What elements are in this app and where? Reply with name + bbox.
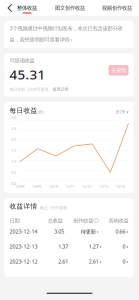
staticText: 0 ›	[122, 258, 128, 265]
staticText: 收益详情	[9, 202, 37, 210]
button[interactable]: 整体收益	[16, 0, 38, 16]
staticText: 日期	[9, 217, 19, 224]
staticText: 1.37	[58, 243, 68, 250]
staticText: 整体收益	[17, 5, 37, 11]
staticText: 图文创作收益	[55, 5, 85, 11]
staticText: 总收益	[48, 217, 63, 224]
staticText: 截止 13:59 更新	[40, 205, 67, 210]
button[interactable]: 2023-12-14	[9, 224, 128, 239]
staticText: 12/11	[65, 183, 74, 189]
staticText: 12/13	[99, 183, 108, 189]
button[interactable]: 去提现	[108, 65, 128, 75]
staticText: 2.5	[11, 126, 16, 131]
staticText: 视频创作收益	[102, 5, 132, 11]
button[interactable]: 2023-12-13	[9, 239, 128, 254]
button[interactable]: 提现记录	[52, 87, 68, 92]
staticText: 创作收益ⓘ	[73, 217, 98, 224]
button[interactable]: 视频创作收益	[102, 0, 132, 16]
staticText: 2023-12-12	[9, 258, 37, 265]
staticText: 去提现	[111, 67, 126, 74]
staticText: 0.5	[11, 170, 16, 175]
button[interactable]: 图文创作收益	[55, 0, 85, 16]
staticText: 益，若想查明细可查看详情 ›	[9, 36, 72, 43]
staticText: 2.0	[11, 137, 16, 142]
button[interactable]: 近7天 ▾	[115, 109, 128, 114]
staticText: 1.0	[11, 159, 16, 164]
staticText: 0 ›	[122, 243, 128, 250]
staticText: 12/08	[15, 183, 24, 189]
staticText: 可提现收益	[9, 57, 34, 64]
button[interactable]: 3个视频通过中视频计划发布，本次已包含该部分收	[4, 21, 133, 48]
staticText: 其他收益	[108, 217, 128, 224]
staticText: 1.27 ›	[89, 243, 102, 250]
staticText: 2023-12-14	[9, 228, 37, 235]
staticText: 2.61	[58, 258, 68, 265]
staticText: 45.31	[9, 65, 45, 83]
staticText: 2023-12-13	[9, 243, 37, 250]
staticText: 近7天 ▾	[115, 109, 128, 114]
staticText: 3个视频通过中视频计划发布，本次已包含该部分收	[9, 25, 122, 32]
staticText: 待更新 ›	[81, 228, 99, 235]
staticText: 12/14	[116, 183, 125, 189]
staticText: 2.61 ›	[89, 258, 102, 265]
button[interactable]: Back	[4, 0, 16, 16]
staticText: 0.0	[11, 181, 16, 186]
staticText: 12/12	[82, 183, 91, 189]
staticText: 3.05	[54, 228, 64, 235]
staticText: 0.66 ›	[115, 228, 128, 235]
staticText: 1.5	[11, 148, 16, 153]
staticText: 12/10	[49, 183, 58, 189]
staticText: 12/09	[32, 183, 41, 189]
staticText: 每日收益	[9, 106, 37, 114]
staticText: (元)	[37, 109, 43, 114]
staticText: 3.0	[11, 115, 16, 120]
staticText: 每日9:00 - 23:00可提现	[9, 87, 48, 92]
button[interactable]: 2023-12-12	[9, 254, 128, 269]
staticText: 提现记录	[52, 87, 68, 92]
